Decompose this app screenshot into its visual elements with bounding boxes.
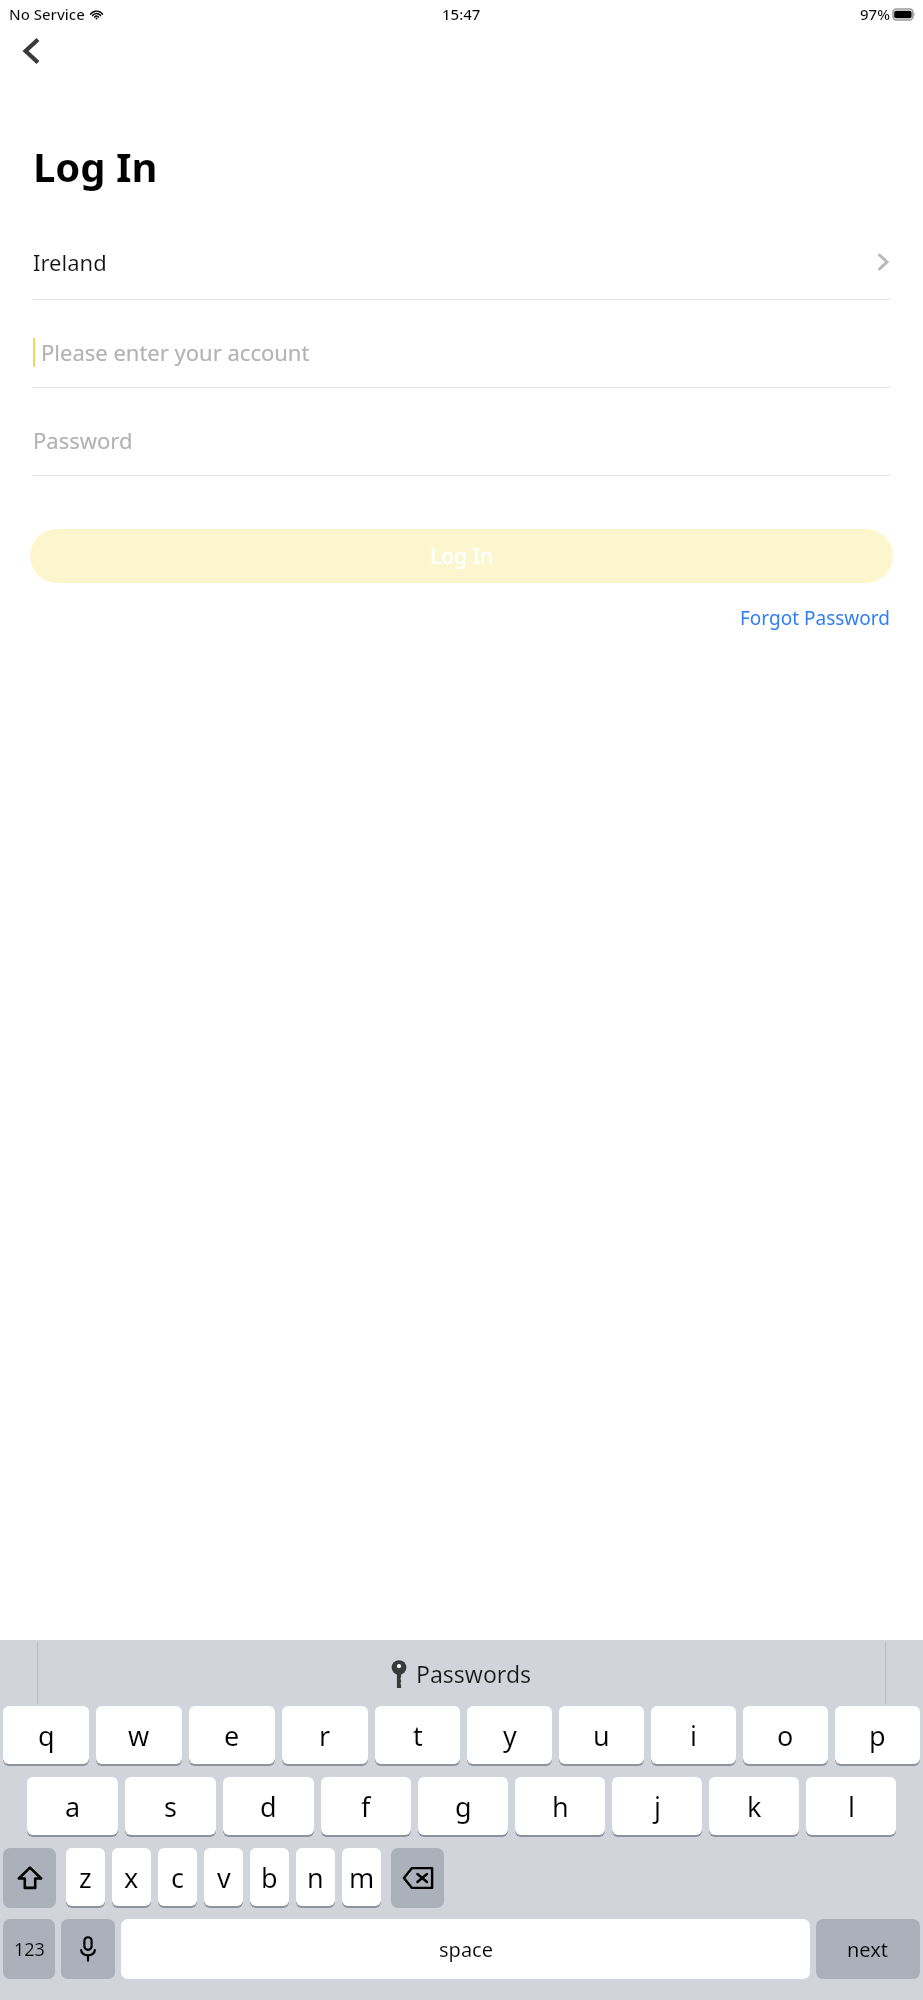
button[interactable]: Shift bbox=[3, 1848, 56, 1908]
staticText: f bbox=[361, 1788, 371, 1825]
button[interactable]: Dictate bbox=[61, 1919, 115, 1979]
button[interactable]: h bbox=[515, 1777, 605, 1835]
staticText: Password bbox=[33, 425, 133, 455]
button[interactable]: l bbox=[806, 1777, 896, 1835]
staticText: h bbox=[552, 1788, 569, 1825]
button[interactable]: g bbox=[418, 1777, 508, 1835]
button[interactable]: y bbox=[467, 1706, 552, 1764]
staticText: v bbox=[217, 1859, 231, 1896]
button[interactable]: a bbox=[27, 1777, 118, 1835]
button[interactable]: p bbox=[835, 1706, 920, 1764]
button[interactable]: b bbox=[250, 1848, 289, 1906]
staticText: space bbox=[439, 1936, 493, 1963]
staticText: 97% bbox=[860, 4, 890, 24]
staticText: l bbox=[848, 1788, 855, 1825]
staticText: Log In bbox=[430, 542, 494, 571]
button[interactable]: j bbox=[612, 1777, 702, 1835]
button[interactable]: e bbox=[189, 1706, 275, 1764]
staticText: q bbox=[38, 1717, 55, 1754]
button[interactable]: o bbox=[743, 1706, 828, 1764]
button[interactable]: Password bbox=[33, 418, 890, 462]
button[interactable]: c bbox=[158, 1848, 197, 1906]
staticText: w bbox=[128, 1717, 150, 1754]
button[interactable]: Back bbox=[8, 27, 56, 75]
staticText: c bbox=[171, 1859, 184, 1896]
staticText: m bbox=[349, 1859, 375, 1896]
staticText: y bbox=[503, 1717, 517, 1754]
button[interactable]: v bbox=[204, 1848, 243, 1906]
button[interactable]: next bbox=[816, 1919, 920, 1979]
staticText: j bbox=[654, 1788, 661, 1825]
staticText: next bbox=[847, 1936, 889, 1963]
button[interactable]: m bbox=[342, 1848, 381, 1906]
button[interactable]: w bbox=[96, 1706, 182, 1764]
staticText: r bbox=[319, 1717, 331, 1754]
button[interactable]: s bbox=[125, 1777, 216, 1835]
button[interactable]: i bbox=[651, 1706, 736, 1764]
staticText: k bbox=[747, 1788, 762, 1825]
staticText: No Service bbox=[9, 4, 85, 24]
button[interactable]: Ireland bbox=[33, 239, 890, 285]
button[interactable]: Log In bbox=[30, 529, 893, 583]
button[interactable]: x bbox=[112, 1848, 151, 1906]
staticText: t bbox=[413, 1717, 423, 1754]
button[interactable]: Backspace bbox=[391, 1848, 444, 1908]
staticText: p bbox=[869, 1717, 886, 1754]
button[interactable]: u bbox=[559, 1706, 644, 1764]
staticText: 15:47 bbox=[442, 4, 481, 24]
staticText: z bbox=[79, 1859, 92, 1896]
staticText: u bbox=[593, 1717, 610, 1754]
button[interactable]: r bbox=[282, 1706, 368, 1764]
button[interactable]: Please enter your account bbox=[33, 330, 890, 374]
staticText: Passwords bbox=[416, 1658, 532, 1689]
staticText: a bbox=[65, 1788, 81, 1825]
staticText: s bbox=[164, 1788, 177, 1825]
staticText: b bbox=[261, 1859, 278, 1896]
staticText: d bbox=[260, 1788, 277, 1825]
button[interactable]: Forgot Password bbox=[740, 605, 890, 631]
button[interactable]: d bbox=[223, 1777, 314, 1835]
staticText: Log In bbox=[33, 139, 158, 193]
staticText: Forgot Password bbox=[740, 605, 890, 631]
staticText: Ireland bbox=[33, 247, 107, 277]
button[interactable]: space bbox=[121, 1919, 810, 1979]
button[interactable]: z bbox=[66, 1848, 105, 1906]
button[interactable]: f bbox=[321, 1777, 411, 1835]
button[interactable]: k bbox=[709, 1777, 799, 1835]
button[interactable]: n bbox=[296, 1848, 335, 1906]
staticText: x bbox=[124, 1859, 139, 1896]
staticText: o bbox=[777, 1717, 794, 1754]
staticText: 123 bbox=[14, 1937, 45, 1962]
button[interactable]: Passwords bbox=[391, 1658, 532, 1689]
button[interactable]: t bbox=[375, 1706, 460, 1764]
staticText: g bbox=[455, 1788, 472, 1825]
staticText: n bbox=[307, 1859, 324, 1896]
button[interactable]: q bbox=[3, 1706, 89, 1764]
staticText: i bbox=[690, 1717, 697, 1754]
staticText: Please enter your account bbox=[41, 337, 310, 367]
staticText: e bbox=[224, 1717, 240, 1754]
button[interactable]: 123 bbox=[3, 1919, 55, 1979]
